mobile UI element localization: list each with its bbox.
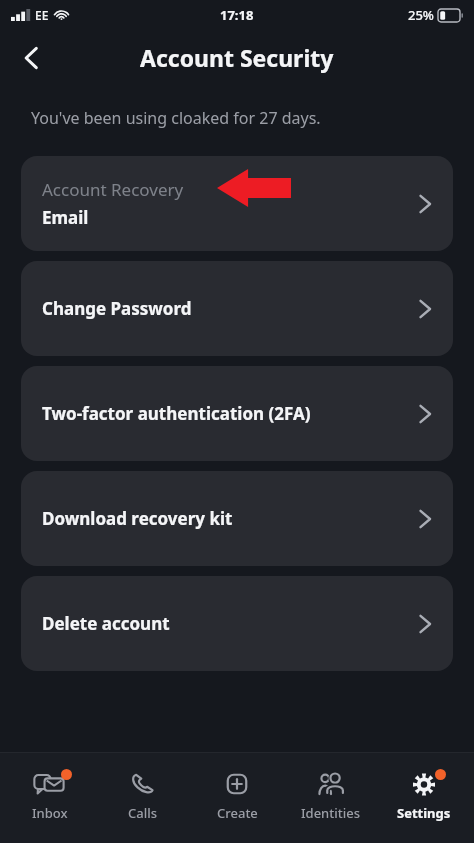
button[interactable]: Delete account (21, 576, 453, 671)
staticText: Delete account (42, 612, 418, 635)
staticText: Email (42, 206, 89, 229)
button[interactable]: Back (8, 35, 54, 81)
staticText: EE (35, 7, 49, 23)
staticText: Create (217, 804, 258, 822)
button[interactable]: Download recovery kit (21, 471, 453, 566)
button[interactable]: Account Recovery (21, 156, 453, 251)
staticText: Download recovery kit (42, 507, 418, 530)
button[interactable]: Two-factor authentication (2FA) (21, 366, 453, 461)
staticText: Change Password (42, 297, 418, 320)
staticText: Identities (301, 804, 361, 822)
staticText: Account Recovery (42, 178, 184, 201)
staticText: Account Security (140, 42, 334, 73)
button[interactable]: Settings (380, 753, 468, 822)
button[interactable]: Identities (287, 753, 375, 822)
button[interactable]: Create (193, 753, 281, 822)
staticText: Calls (128, 804, 158, 822)
staticText: Settings (397, 804, 451, 822)
button[interactable]: Change Password (21, 261, 453, 356)
staticText: Two-factor authentication (2FA) (42, 402, 418, 425)
staticText: 17:18 (220, 6, 254, 24)
button[interactable]: Calls (99, 753, 187, 822)
staticText: Inbox (32, 804, 68, 822)
staticText: You've been using cloaked for 27 days. (31, 107, 321, 129)
button[interactable]: Inbox (6, 753, 94, 822)
staticText: 25% (408, 6, 434, 24)
